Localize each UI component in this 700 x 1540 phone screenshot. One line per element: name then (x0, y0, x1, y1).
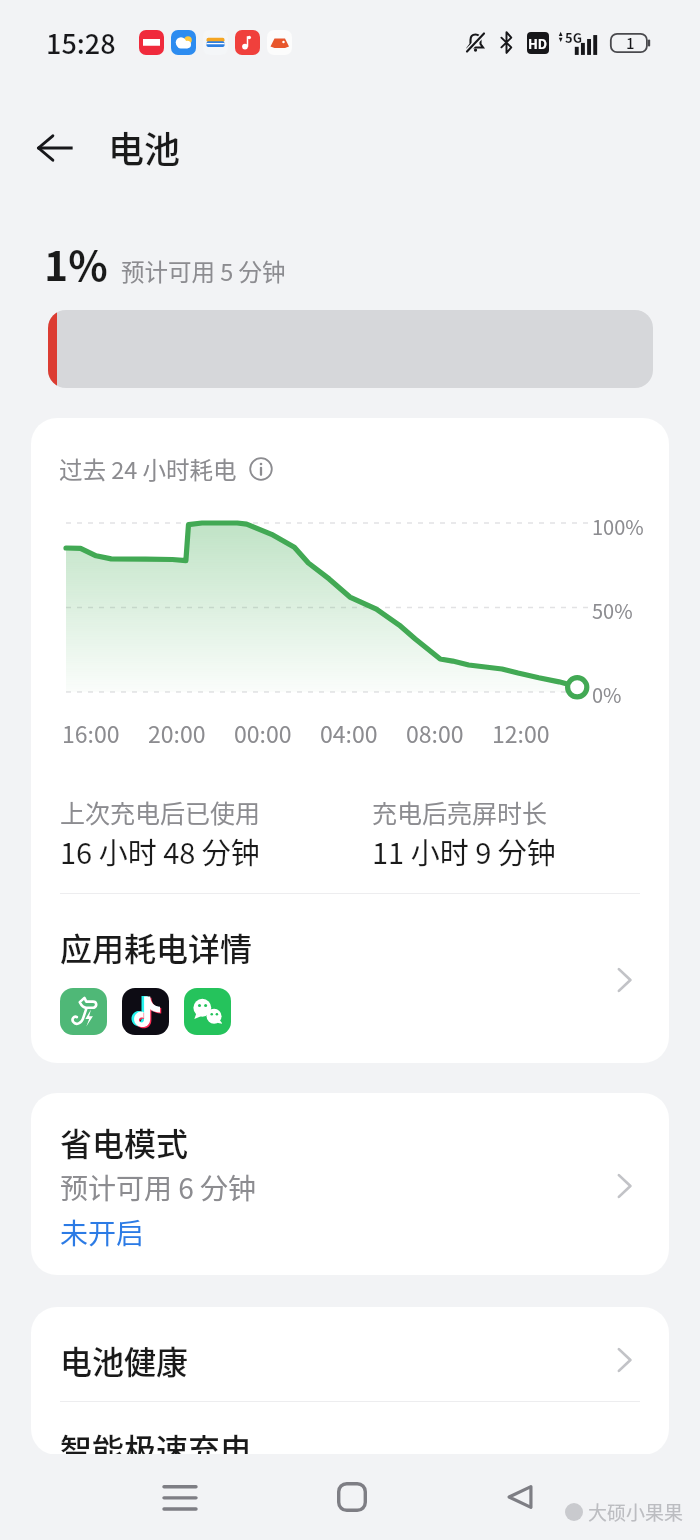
staticText: 12:00 (492, 716, 550, 749)
staticText: 1 (626, 32, 635, 54)
button[interactable]: 应用耗电详情 (31, 894, 669, 1063)
staticText: 50% (592, 596, 633, 625)
staticText: 过去 24 小时耗电 (59, 452, 237, 486)
staticText: 充电后亮屏时长 (372, 794, 548, 830)
staticText: 智能极速充电 (60, 1425, 640, 1455)
staticText: 04:00 (320, 716, 378, 749)
button[interactable]: 智能极速充电 (31, 1402, 669, 1455)
staticText: 大硕小果果 (588, 1498, 684, 1526)
staticText: 上次充电后已使用 (60, 794, 261, 830)
staticText: 预计可用 6 分钟 (60, 1167, 257, 1208)
staticText: 15:28 (46, 23, 116, 62)
staticText: 00:00 (234, 716, 292, 749)
staticText: 5G (565, 28, 582, 47)
staticText: 16 小时 48 分钟 (60, 830, 260, 872)
staticText: 应用耗电详情 (60, 924, 253, 970)
staticText: HD (528, 34, 548, 53)
staticText: 0% (592, 680, 622, 709)
button[interactable]: Back (488, 1454, 552, 1540)
staticText: 16:00 (62, 716, 120, 749)
button[interactable]: 省电模式 (31, 1093, 669, 1275)
button[interactable]: Info (249, 457, 273, 481)
staticText: 预计可用 5 分钟 (121, 254, 286, 288)
staticText: 100% (592, 512, 644, 541)
staticText: 省电模式 (60, 1119, 189, 1165)
staticText: 未开启 (60, 1212, 145, 1253)
staticText: 电池 (108, 121, 181, 173)
button[interactable]: Home (320, 1454, 384, 1540)
button[interactable]: 电池健康 (31, 1307, 669, 1401)
staticText: 11 小时 9 分钟 (372, 830, 556, 872)
staticText: 电池健康 (60, 1337, 608, 1383)
staticText: 20:00 (148, 716, 206, 749)
button[interactable]: Back (23, 116, 87, 180)
button[interactable]: Recent apps (148, 1454, 212, 1540)
staticText: 08:00 (406, 716, 464, 749)
staticText: 1% (44, 233, 108, 292)
